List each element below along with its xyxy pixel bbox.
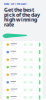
button[interactable] bbox=[2, 86, 42, 94]
staticText: high winning bbox=[4, 16, 37, 23]
button[interactable] bbox=[2, 94, 42, 100]
button[interactable] bbox=[2, 71, 42, 79]
button[interactable] bbox=[2, 41, 42, 48]
button[interactable] bbox=[2, 64, 42, 71]
staticText: pick of the day bbox=[4, 11, 40, 18]
staticText: BEST OF THE DAY bbox=[4, 2, 27, 6]
button[interactable] bbox=[2, 48, 42, 56]
button[interactable] bbox=[2, 79, 42, 86]
button[interactable] bbox=[2, 56, 42, 63]
staticText: rate bbox=[4, 21, 14, 28]
staticText: Get the best bbox=[4, 6, 34, 13]
